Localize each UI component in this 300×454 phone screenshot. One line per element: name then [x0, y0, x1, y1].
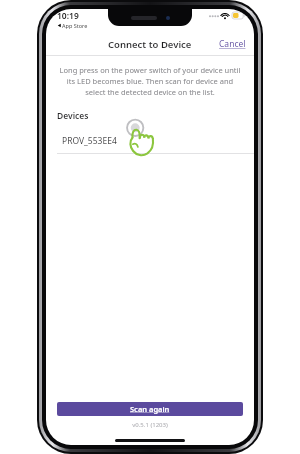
staticText: Cancel [219, 38, 246, 50]
staticText: App Store [62, 22, 88, 29]
staticText: v0.5.1 (1203) [46, 421, 254, 429]
staticText: Devices [57, 110, 89, 122]
button[interactable]: Cancel [211, 34, 254, 54]
staticText: Long press on the power switch of your d… [57, 65, 243, 97]
staticText: PROV_553EE4 [62, 135, 117, 147]
staticText: 10:19 [57, 10, 79, 22]
other: Tap device [125, 119, 159, 159]
button[interactable]: PROV_553EE4 [46, 129, 254, 153]
button[interactable]: Scan again [57, 402, 243, 416]
staticText: Connect to Device [108, 38, 192, 51]
staticText: Scan again [130, 404, 170, 414]
